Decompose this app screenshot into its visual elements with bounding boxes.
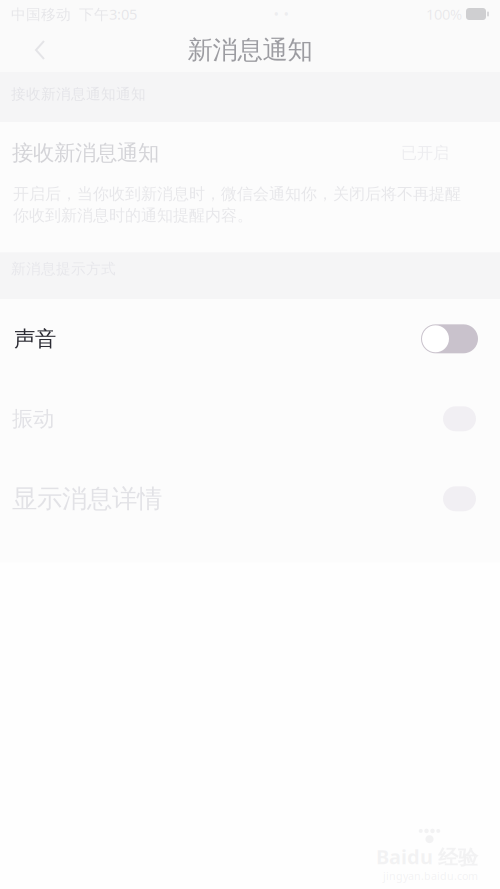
staticText: 新消息提示方式 (11, 260, 116, 278)
staticText: 你收到新消息时的通知提醒内容。 (13, 206, 253, 225)
button[interactable]: 声音 (0, 299, 500, 378)
button[interactable]: 显示消息详情 (0, 459, 500, 562)
staticText: 显示消息详情 (12, 483, 162, 514)
staticText: 开启后，当你收到新消息时，微信会通知你，关闭后将不再提醒 (13, 184, 461, 204)
button[interactable]: 接收新消息通知 (0, 122, 500, 184)
staticText: Baidu 经验 (376, 843, 478, 870)
staticText: 声音 (14, 326, 56, 352)
staticText: 振动 (12, 406, 54, 432)
staticText: 接收新消息通知 (12, 140, 159, 166)
staticText: jingyan.baidu.com (383, 869, 478, 883)
staticText: 100% (426, 4, 462, 24)
button[interactable]: Back (18, 28, 62, 72)
staticText: 新消息通知 (187, 34, 312, 65)
staticText: 已开启 (401, 143, 449, 163)
staticText: 中国移动 下午3:05 (11, 4, 137, 24)
staticText: 接收新消息通知通知 (11, 85, 146, 103)
